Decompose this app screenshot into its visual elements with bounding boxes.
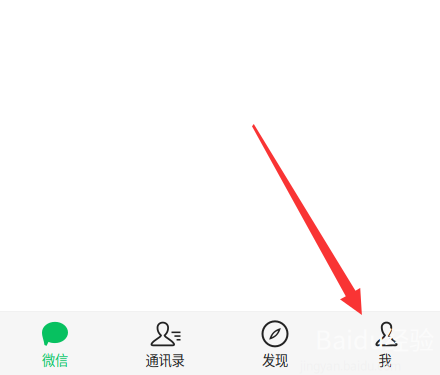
button[interactable]: 通讯录: [110, 313, 220, 374]
staticText: 微信: [42, 350, 68, 369]
staticText: Baidu经验: [315, 320, 434, 357]
staticText: 发现: [262, 350, 288, 369]
staticText: jingyan.baidu.com: [300, 358, 401, 374]
button[interactable]: 我: [330, 313, 440, 374]
staticText: 我: [378, 350, 391, 369]
staticText: 通讯录: [145, 350, 184, 369]
button[interactable]: 微信: [0, 313, 110, 374]
button[interactable]: 发现: [220, 313, 330, 374]
